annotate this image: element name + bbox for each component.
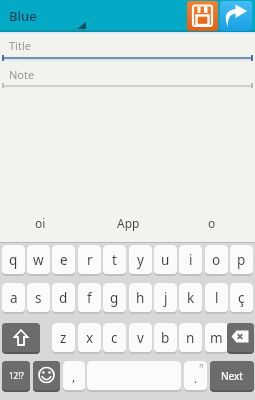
staticText: j [164, 289, 168, 307]
button[interactable]: r [78, 245, 101, 276]
button[interactable]: v [129, 323, 152, 354]
staticText: Note [9, 67, 35, 82]
staticText: ?! [199, 362, 204, 370]
button[interactable]: d [52, 283, 75, 314]
staticText: l [215, 289, 219, 307]
staticText: ç [238, 289, 245, 307]
staticText: g [110, 289, 119, 307]
staticText: x [86, 329, 94, 347]
button[interactable]: i [179, 245, 202, 276]
staticText: w [33, 251, 44, 269]
button[interactable]: b [154, 323, 177, 354]
button[interactable]: e [52, 245, 75, 276]
button[interactable] [2, 323, 40, 354]
button[interactable] [227, 323, 254, 354]
button[interactable]: s [27, 283, 50, 314]
staticText: c [111, 329, 118, 347]
button[interactable]: x [78, 323, 101, 354]
button[interactable]: . [184, 361, 207, 392]
staticText: p [237, 251, 246, 269]
staticText: s [35, 289, 42, 307]
button[interactable]: a [2, 283, 25, 314]
button[interactable]: 12!? [2, 361, 30, 392]
staticText: , [72, 368, 76, 384]
button[interactable]: g [103, 283, 126, 314]
staticText: oi [35, 215, 46, 231]
staticText: e [60, 251, 68, 269]
button[interactable]: q [2, 245, 25, 276]
staticText: t [112, 251, 117, 269]
button[interactable]: f [78, 283, 101, 314]
button[interactable]: Title [0, 33, 255, 59]
staticText: . [194, 370, 198, 386]
staticText: Title [9, 38, 31, 53]
staticText: App [117, 215, 140, 231]
staticText: b [161, 329, 170, 347]
button[interactable] [187, 1, 218, 31]
button[interactable] [33, 361, 60, 392]
staticText: h [136, 289, 145, 307]
button[interactable]: n [179, 323, 202, 354]
button[interactable]: o [192, 215, 232, 231]
button[interactable]: oi [20, 215, 60, 231]
button[interactable]: t [103, 245, 126, 276]
staticText: z [60, 329, 67, 347]
staticText: f [87, 289, 92, 307]
button[interactable]: c [103, 323, 126, 354]
button[interactable]: z [52, 323, 75, 354]
staticText: Blue [9, 7, 37, 25]
button[interactable]: u [154, 245, 177, 276]
button[interactable]: y [129, 245, 152, 276]
button[interactable]: l [205, 283, 228, 314]
staticText: o [212, 251, 221, 269]
button[interactable]: , [63, 361, 85, 392]
button[interactable]: Blue [0, 0, 100, 31]
button[interactable]: w [27, 245, 50, 276]
button[interactable]: j [154, 283, 177, 314]
staticText: v [137, 329, 144, 347]
staticText: q [9, 251, 18, 269]
staticText: i [189, 251, 193, 269]
button[interactable]: App [108, 215, 148, 231]
staticText: y [137, 251, 144, 269]
staticText: u [161, 251, 170, 269]
button[interactable]: k [179, 283, 202, 314]
staticText: r [87, 251, 93, 269]
staticText: Next [221, 369, 243, 383]
staticText: d [59, 289, 68, 307]
button[interactable]: Note [0, 60, 255, 88]
staticText: m [210, 329, 223, 347]
staticText: a [10, 289, 18, 307]
button[interactable]: h [129, 283, 152, 314]
button[interactable] [87, 361, 181, 392]
staticText: 12!? [9, 370, 24, 381]
staticText: o [208, 215, 216, 231]
button[interactable]: o [205, 245, 228, 276]
staticText: n [186, 329, 195, 347]
button[interactable]: Next [210, 361, 254, 392]
button[interactable] [220, 1, 252, 31]
button[interactable]: ç [230, 283, 253, 314]
button[interactable]: p [230, 245, 253, 276]
staticText: k [187, 289, 195, 307]
button[interactable]: m [205, 323, 228, 354]
